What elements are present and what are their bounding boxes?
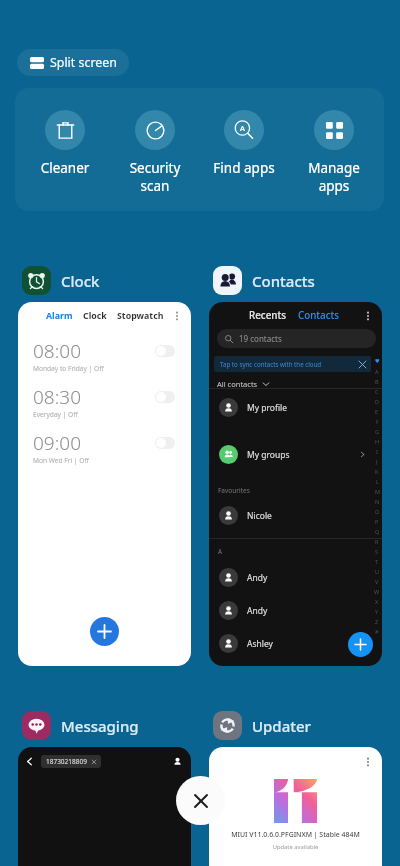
staticText: D	[375, 398, 380, 405]
staticText: A	[375, 368, 379, 375]
staticText: V	[375, 578, 379, 585]
staticText: C	[375, 388, 379, 395]
other: Dismiss	[359, 361, 366, 368]
button[interactable]: 08:30	[33, 384, 175, 419]
button[interactable]: Messaging	[22, 711, 139, 740]
staticText: All contacts	[217, 379, 258, 389]
staticText: 18730218809	[46, 757, 87, 766]
staticText: Clock	[61, 271, 100, 291]
staticText: O	[375, 508, 380, 515]
button[interactable]: My profile	[209, 391, 382, 424]
staticText: A	[240, 123, 245, 133]
staticText: Messaging	[61, 716, 139, 736]
button[interactable]: All contacts	[215, 378, 271, 390]
staticText: 19 contacts	[239, 333, 282, 344]
staticText: Manage apps	[294, 159, 374, 195]
staticText: K	[375, 468, 379, 475]
button[interactable]: Ashley	[209, 627, 382, 660]
button[interactable]: Andy	[209, 561, 382, 594]
staticText: X	[375, 598, 379, 605]
button[interactable]: Recents	[209, 302, 382, 666]
staticText: N	[375, 498, 380, 505]
staticText: U	[375, 568, 380, 575]
button[interactable]: Tap to sync contacts with the cloud	[214, 356, 371, 372]
staticText: Recents	[249, 309, 286, 322]
staticText: ♥	[375, 358, 380, 364]
staticText: Contacts	[252, 271, 315, 291]
staticText: S	[375, 548, 379, 555]
button[interactable]: Nicole	[209, 499, 382, 532]
staticText: Tap to sync contacts with the cloud	[220, 360, 322, 368]
staticText: 08:30	[33, 384, 82, 410]
button[interactable]: Toggle alarm	[155, 345, 175, 357]
staticText: Clock	[83, 310, 107, 322]
staticText: Update available	[209, 843, 382, 851]
button[interactable]: 19 contacts	[217, 329, 376, 348]
button[interactable]: Alarm	[18, 302, 191, 666]
button[interactable]: Andy	[209, 594, 382, 627]
staticText: Cleaner	[25, 159, 105, 177]
staticText: #	[375, 628, 379, 635]
staticText: 09:00	[33, 430, 82, 456]
button[interactable]: Manage apps	[294, 108, 374, 197]
button[interactable]: Security scan	[115, 108, 195, 197]
button[interactable]: Contacts	[213, 266, 315, 295]
staticText: Updater	[252, 716, 311, 736]
staticText: I	[376, 448, 378, 455]
button[interactable]: Split screen	[17, 49, 129, 76]
button[interactable]: My groups	[209, 438, 382, 471]
button[interactable]: Updater	[213, 711, 311, 740]
staticText: Ashley	[247, 638, 273, 650]
staticText: H	[375, 438, 380, 445]
staticText: L	[376, 478, 379, 485]
staticText: F	[376, 418, 379, 425]
staticText: Favourites	[218, 486, 250, 495]
staticText: Q	[375, 528, 380, 535]
button[interactable]: Back	[25, 757, 34, 766]
staticText: My profile	[247, 402, 288, 414]
button[interactable]: Alphabet index	[372, 356, 382, 636]
button[interactable]: Cleaner	[25, 108, 105, 179]
button[interactable]: A	[204, 108, 284, 179]
staticText: B	[375, 378, 379, 385]
staticText: W	[374, 588, 380, 595]
staticText: Everyday | Off	[33, 410, 78, 419]
button[interactable]: Add contact	[348, 632, 373, 657]
staticText: T	[375, 558, 379, 565]
staticText: Andy	[247, 605, 268, 617]
staticText: A	[218, 547, 223, 556]
staticText: My groups	[247, 449, 290, 461]
button[interactable]: Add alarm	[90, 617, 119, 646]
staticText: J	[376, 458, 378, 465]
staticText: Alarm	[46, 310, 73, 322]
staticText: MIUI V11.0.6.0.PFGINXM | Stable 484M	[209, 830, 382, 839]
button[interactable]: Toggle alarm	[155, 437, 175, 449]
staticText: Split screen	[50, 54, 117, 71]
staticText: Find apps	[204, 159, 284, 177]
staticText: Mon Wed Fri | Off	[33, 456, 89, 465]
staticText: Y	[375, 608, 379, 615]
button[interactable]: More options	[209, 747, 382, 866]
staticText: R	[375, 538, 379, 545]
button[interactable]: More options	[360, 754, 376, 770]
staticText: Monday to Friday | Off	[33, 364, 104, 373]
button[interactable]: 09:00	[33, 430, 175, 465]
button[interactable]: Clock	[22, 266, 100, 295]
button[interactable]: Back	[18, 747, 191, 866]
staticText: 08:00	[33, 338, 82, 364]
button[interactable]: Close all	[176, 776, 225, 825]
staticText: Z	[375, 618, 379, 625]
staticText: Contacts	[298, 309, 340, 322]
staticText: P	[375, 518, 379, 525]
staticText: Stopwatch	[117, 310, 164, 322]
staticText: E	[375, 408, 379, 415]
staticText: M	[375, 488, 380, 495]
button[interactable]: 08:00	[33, 338, 175, 373]
staticText: Nicole	[247, 510, 272, 522]
staticText: G	[375, 428, 380, 435]
staticText: Security scan	[115, 159, 195, 195]
staticText: Andy	[247, 572, 268, 584]
button[interactable]: Toggle alarm	[155, 391, 175, 403]
button[interactable]: Contact details	[173, 757, 182, 766]
button[interactable]: 18730218809	[41, 755, 101, 768]
